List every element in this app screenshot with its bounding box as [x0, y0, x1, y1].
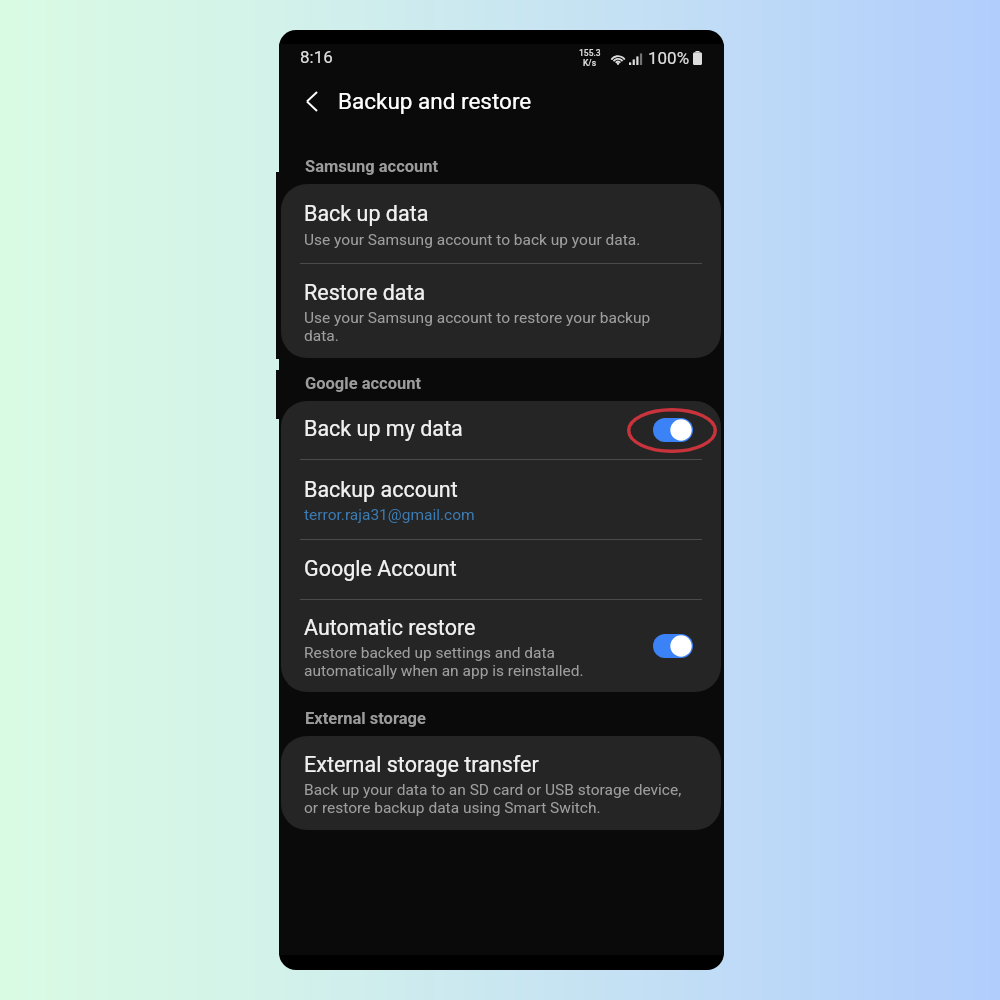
staticText: 100%: [648, 47, 690, 69]
staticText: Use your Samsung account to restore your…: [304, 308, 651, 344]
staticText: Google Account: [304, 554, 457, 582]
staticText: Restore data: [304, 278, 426, 306]
staticText: Back up your data to an SD card or USB s…: [304, 780, 682, 816]
button[interactable]: Google Account: [281, 540, 721, 599]
staticText: Back up data: [304, 199, 429, 227]
button[interactable]: Back up data: [281, 184, 721, 263]
staticText: terror.raja31@gmail.com: [304, 504, 475, 524]
button[interactable]: Backup account: [281, 460, 721, 539]
button[interactable]: Back up my data: [281, 401, 721, 459]
staticText: Use your Samsung account to back up your…: [304, 229, 641, 249]
staticText: Backup account: [304, 475, 458, 503]
staticText: External storage: [305, 707, 426, 728]
staticText: Automatic restore: [304, 613, 476, 641]
staticText: External storage transfer: [304, 750, 539, 778]
staticText: 8:16: [300, 46, 333, 68]
staticText: K/s: [583, 58, 597, 68]
button[interactable]: Automatic restore: [281, 600, 721, 692]
staticText: Google account: [305, 372, 422, 393]
button[interactable]: Restore data: [281, 264, 721, 358]
button[interactable]: External storage transfer: [281, 736, 721, 830]
button[interactable]: Back: [291, 80, 333, 122]
staticText: Backup and restore: [338, 86, 532, 115]
staticText: Samsung account: [305, 155, 439, 176]
staticText: Restore backed up settings and data auto…: [304, 643, 584, 679]
staticText: 155.3: [579, 48, 601, 58]
staticText: Back up my data: [304, 414, 653, 442]
